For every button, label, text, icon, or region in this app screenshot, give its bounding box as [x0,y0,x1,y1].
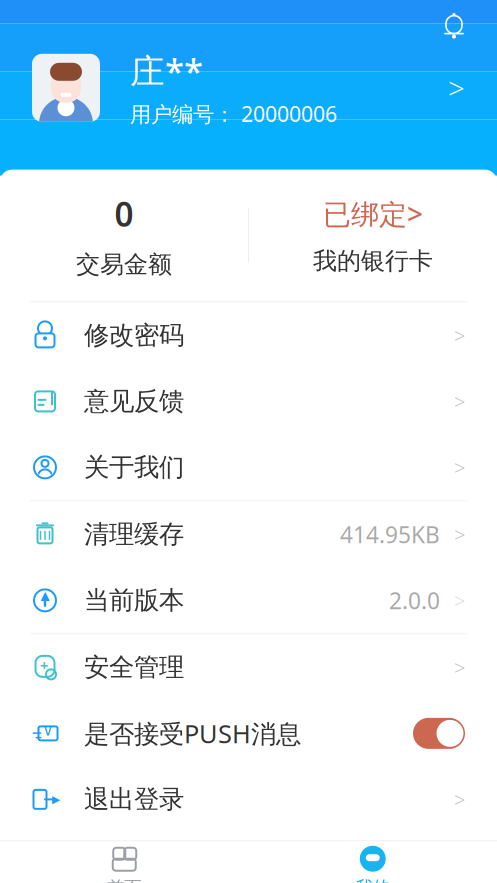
button[interactable]: 0 [0,192,248,279]
staticText: ▶ [52,793,60,805]
staticText: 2.0.0 [389,585,440,615]
staticText: > [454,388,465,415]
button[interactable]: 接受PUSH消息开关 [413,718,465,749]
button[interactable]: ▲ [0,567,497,633]
staticText: > [448,68,465,107]
button[interactable]: 关于我们 [0,434,497,500]
staticText: > [454,322,465,349]
staticText: > [454,587,465,614]
button[interactable]: 通知 [437,9,471,43]
button[interactable]: 首页 [0,841,248,883]
staticText: > [454,521,465,548]
staticText: 交易金额 [76,250,172,279]
button[interactable]: + [0,634,497,700]
staticText: 我的 [356,877,390,883]
staticText: 0 [114,192,133,236]
staticText: 已绑定> [323,195,423,232]
staticText: 庄** [130,48,203,94]
staticText: 关于我们 [84,452,184,483]
staticText: 我的银行卡 [313,246,433,276]
staticText: 修改密码 [84,320,184,351]
staticText: 首页 [107,877,141,883]
button[interactable]: 已绑定> [249,195,497,276]
button[interactable]: 修改密码 [0,302,497,368]
staticText: 退出登录 [84,784,184,815]
staticText: 是否接受PUSH消息 [84,717,301,750]
button[interactable]: 清理缓存 [0,501,497,567]
staticText: ▲ [40,589,49,602]
staticText: > [454,786,465,813]
button[interactable]: 意见反馈 [0,368,497,434]
button[interactable]: 庄** [0,48,497,128]
button[interactable]: ▶ [0,766,497,832]
staticText: > [454,454,465,481]
staticText: 清理缓存 [84,519,184,550]
staticText: + [40,656,48,675]
button[interactable]: 我的 [248,841,497,883]
staticText: 当前版本 [84,585,184,616]
staticText: > [454,654,465,681]
staticText: 意见反馈 [84,386,184,417]
staticText: 用户编号： 20000006 [130,100,337,128]
staticText: 414.95KB [340,519,440,549]
staticText: 安全管理 [84,652,184,683]
staticText: ∨ [42,722,53,739]
